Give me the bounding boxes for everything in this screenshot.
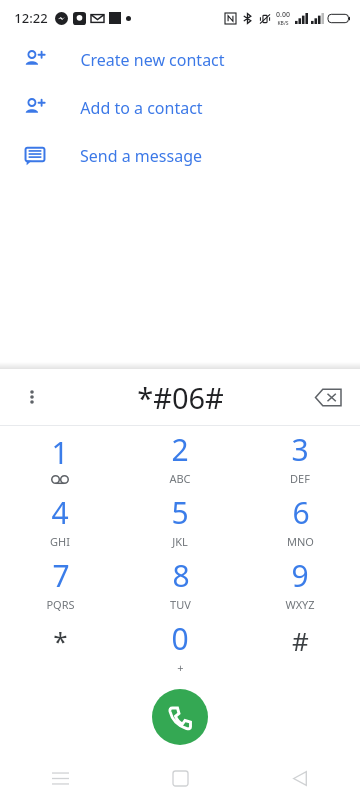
button[interactable]: Back	[240, 756, 360, 800]
button[interactable]: Home	[120, 756, 240, 800]
staticText: 6	[292, 492, 310, 533]
button[interactable]: 0	[120, 615, 240, 678]
staticText: ABC	[169, 471, 191, 486]
staticText: 9	[291, 555, 309, 596]
button[interactable]: #	[240, 615, 360, 678]
button[interactable]: 9	[240, 552, 360, 615]
staticText: JKL	[172, 534, 188, 549]
staticText: KB/S	[277, 20, 289, 27]
staticText: DEF	[290, 471, 310, 486]
staticText: MNO	[287, 534, 314, 549]
button[interactable]: 3	[240, 426, 360, 489]
staticText: TUV	[170, 597, 191, 612]
button[interactable]: 4	[0, 489, 120, 552]
button[interactable]: Create new contact	[0, 36, 360, 84]
button[interactable]: 7	[0, 552, 120, 615]
staticText: 0	[171, 618, 189, 659]
staticText: 4	[51, 492, 69, 533]
staticText: 1	[51, 432, 69, 473]
button[interactable]: Call	[152, 689, 208, 745]
staticText: +	[177, 660, 184, 675]
staticText: WXYZ	[285, 597, 315, 612]
staticText: 8	[172, 555, 190, 596]
staticText: Add to a contact	[80, 97, 203, 119]
button[interactable]: Recents	[0, 756, 120, 800]
button[interactable]: 5	[120, 489, 240, 552]
staticText: 5	[171, 492, 189, 533]
staticText: Send a message	[80, 145, 202, 167]
staticText: 7	[52, 555, 70, 596]
button[interactable]: Send a message	[0, 132, 360, 180]
staticText: 12:22	[14, 9, 48, 27]
staticText: 2	[171, 429, 189, 470]
staticText: GHI	[50, 534, 70, 549]
staticText: 0.00	[276, 10, 290, 20]
staticText: *	[53, 623, 68, 658]
button[interactable]: 8	[120, 552, 240, 615]
staticText: *#06#	[137, 378, 224, 417]
staticText: Create new contact	[80, 49, 225, 71]
staticText: #	[292, 623, 309, 658]
button[interactable]: *	[0, 615, 120, 678]
button[interactable]: 2	[120, 426, 240, 489]
staticText: PQRS	[46, 597, 75, 612]
button[interactable]: More options	[12, 377, 52, 417]
button[interactable]: 1	[0, 426, 120, 489]
button[interactable]: Backspace	[306, 375, 350, 419]
button[interactable]: Add to a contact	[0, 84, 360, 132]
button[interactable]: 6	[240, 489, 360, 552]
staticText: 3	[291, 429, 309, 470]
